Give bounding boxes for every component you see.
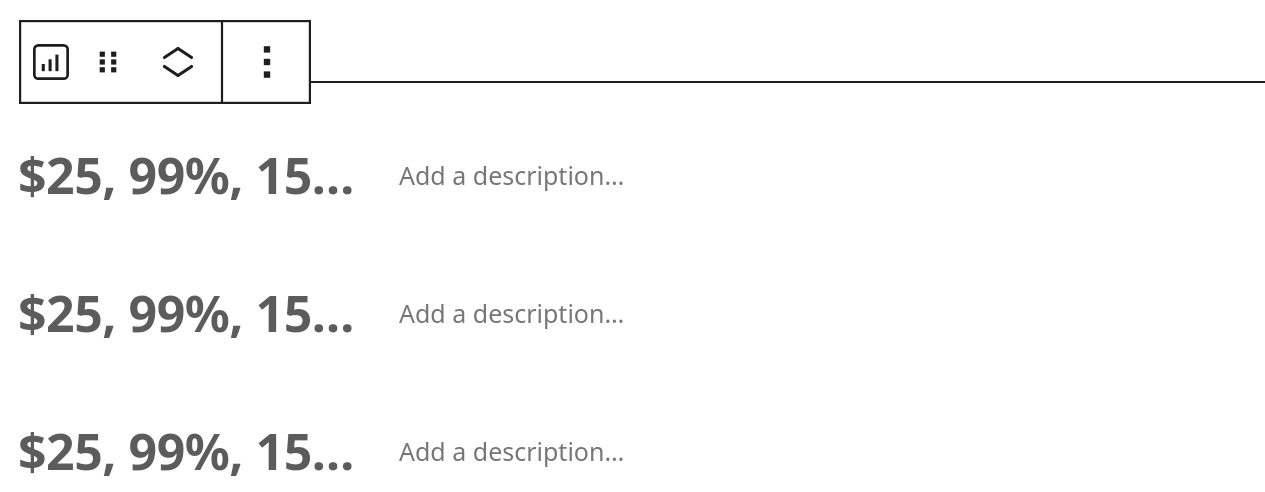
button[interactable]: $25, 99%, 15… — [0, 140, 1265, 210]
staticText: Add a description… — [399, 434, 625, 468]
button[interactable]: Drag — [82, 20, 134, 104]
staticText: $25, 99%, 15… — [18, 279, 355, 347]
button[interactable]: Move up or down — [134, 20, 222, 104]
staticText: Add a description… — [399, 296, 625, 330]
button[interactable]: $25, 99%, 15… — [0, 416, 1265, 486]
staticText: Add a description… — [399, 158, 625, 192]
button[interactable]: More options — [222, 20, 311, 104]
staticText: $25, 99%, 15… — [18, 417, 355, 485]
button[interactable]: $25, 99%, 15… — [0, 278, 1265, 348]
staticText: $25, 99%, 15… — [18, 141, 355, 209]
button[interactable]: Block type: chart — [19, 20, 82, 104]
